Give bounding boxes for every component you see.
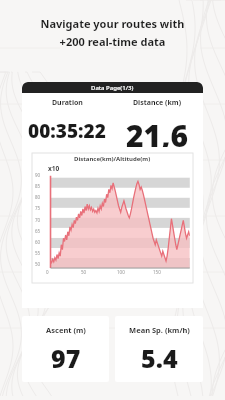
staticText: 100 (117, 269, 125, 275)
staticText: 150 (153, 269, 161, 275)
staticText: Duration (52, 98, 83, 108)
staticText: 97 (51, 341, 81, 375)
staticText: 0 (46, 269, 49, 275)
staticText: Navigate your routes with (0, 16, 225, 31)
staticText: Ascent (m) (46, 325, 86, 335)
staticText: +200 real-time data (0, 34, 225, 49)
staticText: Mean Sp. (km/h) (129, 325, 190, 335)
staticText: 60 (35, 239, 41, 245)
staticText: 75 (35, 205, 41, 211)
staticText: Data Page(1/3) (91, 84, 134, 92)
button[interactable]: Data Page(1/3) (22, 82, 203, 308)
button[interactable]: Ascent (m) (22, 316, 109, 382)
staticText: 65 (35, 228, 41, 234)
staticText: x10 (48, 164, 60, 173)
staticText: 70 (35, 217, 41, 223)
button[interactable]: Mean Sp. (km/h) (115, 316, 203, 382)
staticText: 55 (35, 250, 41, 256)
staticText: 00:35:22 (28, 118, 106, 144)
staticText: 50 (35, 261, 41, 267)
staticText: 21,6 (126, 115, 189, 147)
staticText: Distance(km)/Altitude(m) (74, 155, 151, 163)
other: Distance and altitude chart (32, 153, 193, 283)
staticText: Distance (km) (133, 98, 182, 108)
staticText: 50 (81, 269, 87, 275)
staticText: 5.4 (141, 341, 178, 375)
staticText: 80 (35, 194, 41, 200)
staticText: 85 (35, 183, 41, 189)
staticText: 90 (35, 172, 41, 178)
